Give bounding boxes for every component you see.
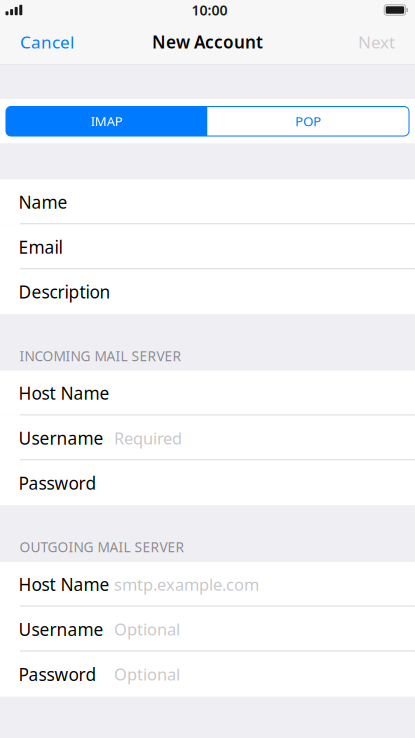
button[interactable]: Next bbox=[338, 20, 415, 64]
button[interactable]: Password bbox=[0, 461, 415, 506]
staticText: Optional bbox=[114, 618, 180, 640]
staticText: Name bbox=[18, 190, 67, 214]
staticText: Optional bbox=[114, 663, 180, 685]
staticText: POP bbox=[295, 112, 321, 130]
staticText: Next bbox=[358, 30, 395, 54]
staticText: Required bbox=[114, 427, 182, 449]
button[interactable]: Host Name bbox=[0, 371, 415, 416]
staticText: New Account bbox=[152, 30, 263, 54]
button[interactable]: Description bbox=[0, 269, 415, 314]
staticText: Email bbox=[18, 235, 62, 259]
staticText: Host Name bbox=[18, 381, 109, 405]
button[interactable]: Host Name bbox=[0, 562, 415, 607]
button[interactable]: IMAP bbox=[6, 106, 207, 136]
staticText: Description bbox=[18, 280, 110, 304]
button[interactable]: POP bbox=[207, 106, 409, 136]
button[interactable]: Username bbox=[0, 416, 415, 461]
button[interactable]: Email bbox=[0, 224, 415, 269]
staticText: OUTGOING MAIL SERVER bbox=[19, 538, 184, 556]
staticText: smtp.example.com bbox=[114, 573, 259, 595]
button[interactable]: Name bbox=[0, 179, 415, 224]
staticText: Password bbox=[18, 662, 96, 686]
button[interactable]: Password bbox=[0, 652, 415, 697]
staticText: Username bbox=[18, 426, 103, 450]
staticText: INCOMING MAIL SERVER bbox=[19, 346, 181, 365]
staticText: 10:00 bbox=[191, 0, 227, 20]
staticText: Username bbox=[18, 617, 103, 641]
staticText: Password bbox=[18, 471, 96, 495]
staticText: IMAP bbox=[91, 112, 123, 130]
staticText: Host Name bbox=[18, 572, 109, 596]
button[interactable]: Username bbox=[0, 607, 415, 652]
staticText: Cancel bbox=[20, 30, 74, 54]
button[interactable]: Cancel bbox=[0, 20, 94, 64]
